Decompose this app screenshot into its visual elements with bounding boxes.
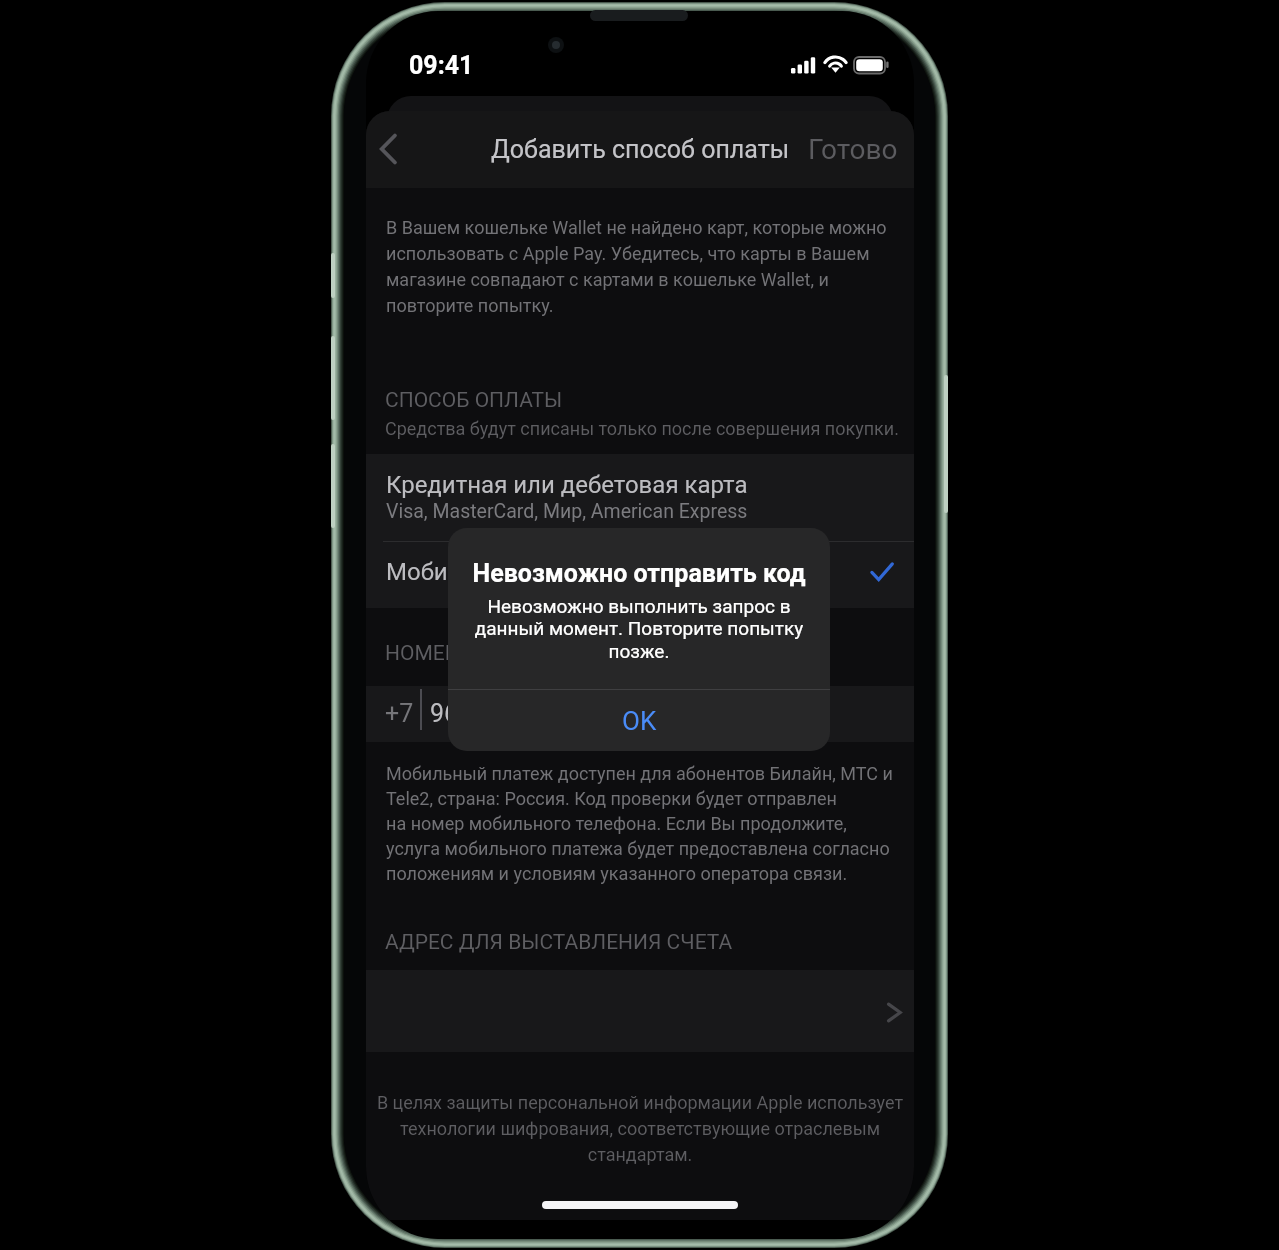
- staticText: СПОСОБ ОПЛАТЫ: [385, 388, 563, 413]
- staticText: В целях защиты персональной информации A…: [375, 1092, 905, 1165]
- staticText: Visa, MasterCard, Мир, American Express: [386, 500, 748, 523]
- button[interactable]: Готово: [794, 124, 912, 174]
- staticText: Добавить способ оплаты: [491, 135, 790, 164]
- staticText: OK: [622, 706, 657, 736]
- staticText: Средства будут списаны только после сове…: [385, 418, 899, 439]
- staticText: Мобильный платеж доступен для абонентов …: [386, 763, 898, 884]
- staticText: Кредитная или дебетовая карта: [386, 471, 748, 499]
- button[interactable]: Назад: [366, 124, 410, 174]
- staticText: НОМЕР ТЕЛЕФОНА: [385, 641, 574, 666]
- staticText: 961 234 56 78: [430, 699, 590, 728]
- staticText: 09:41: [409, 51, 474, 80]
- button[interactable]: Кредитная или дебетовая карта: [366, 454, 914, 541]
- staticText: +7: [385, 699, 414, 728]
- button[interactable]: OK: [448, 690, 830, 751]
- button[interactable]: Мобильный платёж: [366, 542, 914, 608]
- staticText: Готово: [808, 133, 898, 166]
- staticText: Мобильный платёж: [386, 558, 610, 586]
- staticText: Невозможно отправить код: [456, 559, 822, 588]
- staticText: Невозможно выполнить запрос в данный мом…: [464, 595, 814, 662]
- staticText: В Вашем кошельке Wallet не найдено карт,…: [386, 217, 894, 316]
- staticText: АДРЕС ДЛЯ ВЫСТАВЛЕНИЯ СЧЕТА: [385, 930, 733, 955]
